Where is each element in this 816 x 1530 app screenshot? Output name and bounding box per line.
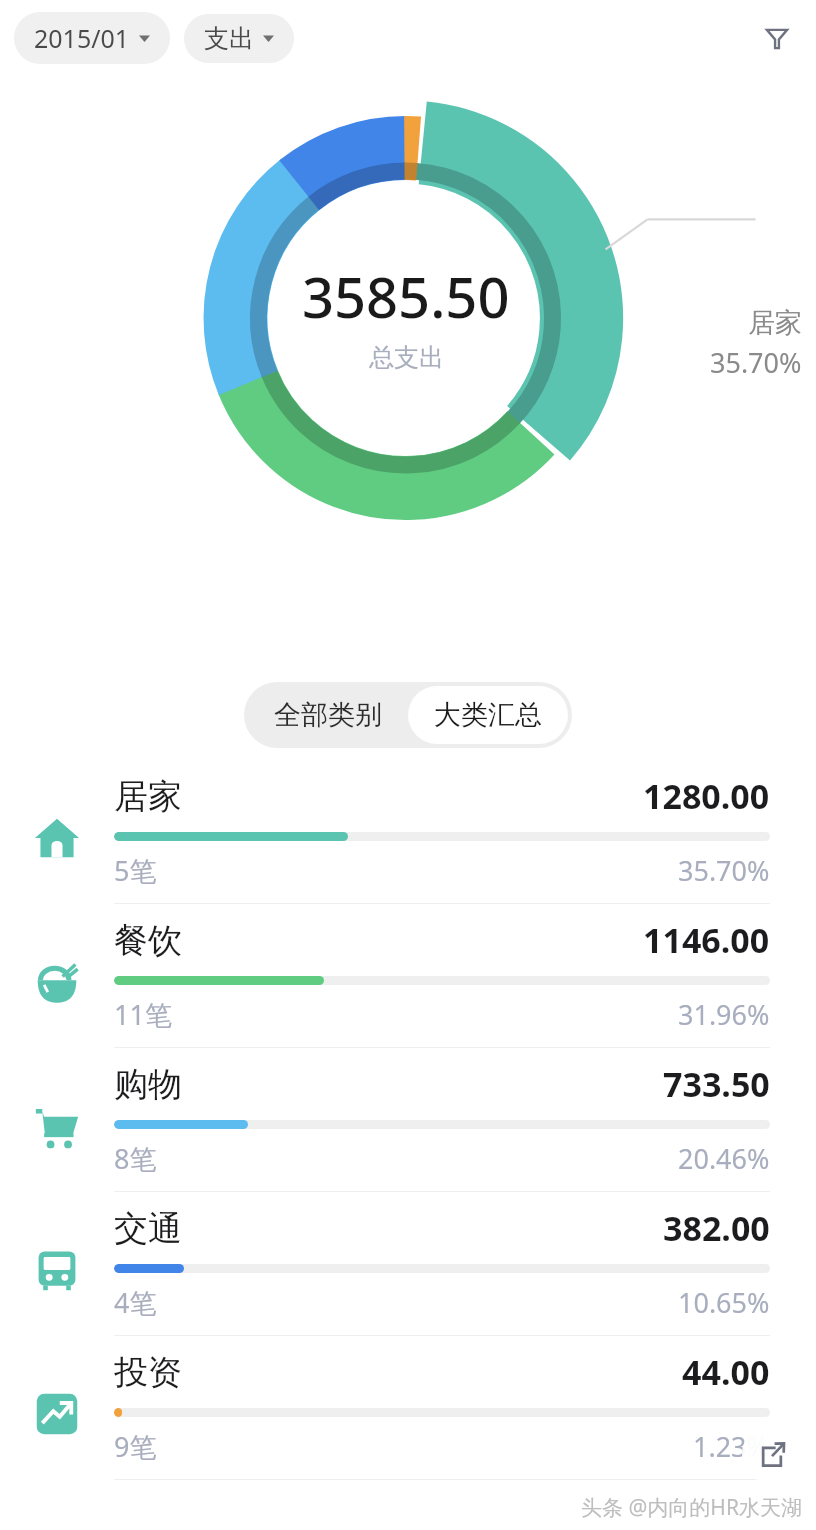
staticText: 10.65% [678,1284,770,1321]
staticText: 382.00 [663,1205,770,1251]
staticText: 居家 [114,775,182,818]
staticText: 11笔 [114,996,172,1033]
staticText: 餐饮 [114,919,182,962]
button[interactable]: 支出 [184,14,294,63]
staticText: 4笔 [114,1284,157,1321]
button[interactable]: 全部类别 [248,686,408,744]
staticText: 头条 @内向的HR水天湖 [581,1493,802,1522]
button[interactable]: Filter [756,17,798,59]
staticText: 733.50 [663,1061,770,1107]
staticText: 大类汇总 [434,698,542,732]
staticText: 交通 [114,1207,182,1250]
staticText: 31.96% [678,996,770,1033]
staticText: 1280.00 [643,773,770,819]
button[interactable]: 投资 [0,1342,816,1486]
button[interactable]: 居家 [0,766,816,910]
staticText: 总支出 [369,342,444,373]
staticText: 投资 [114,1351,182,1394]
staticText: 居家 [748,306,802,340]
button[interactable]: 餐饮 [0,910,816,1054]
staticText: 2015/01 [34,21,130,55]
staticText: 全部类别 [274,698,382,732]
staticText: 9笔 [114,1428,157,1465]
staticText: 购物 [114,1063,182,1106]
staticText: 3585.50 [302,258,510,334]
staticText: 5笔 [114,852,157,889]
button[interactable]: 大类汇总 [408,686,568,744]
staticText: 支出 [204,23,254,54]
staticText: 20.46% [678,1140,770,1177]
button[interactable]: 购物 [0,1054,816,1198]
staticText: 35.70% [710,344,802,381]
staticText: 8笔 [114,1140,157,1177]
staticText: 44.00 [682,1349,770,1395]
button[interactable]: Share [742,1424,802,1484]
staticText: 35.70% [678,852,770,889]
staticText: 1.23% [693,1428,770,1465]
button[interactable]: 2015/01 [14,12,170,64]
button[interactable]: 交通 [0,1198,816,1342]
staticText: 1146.00 [643,917,770,963]
